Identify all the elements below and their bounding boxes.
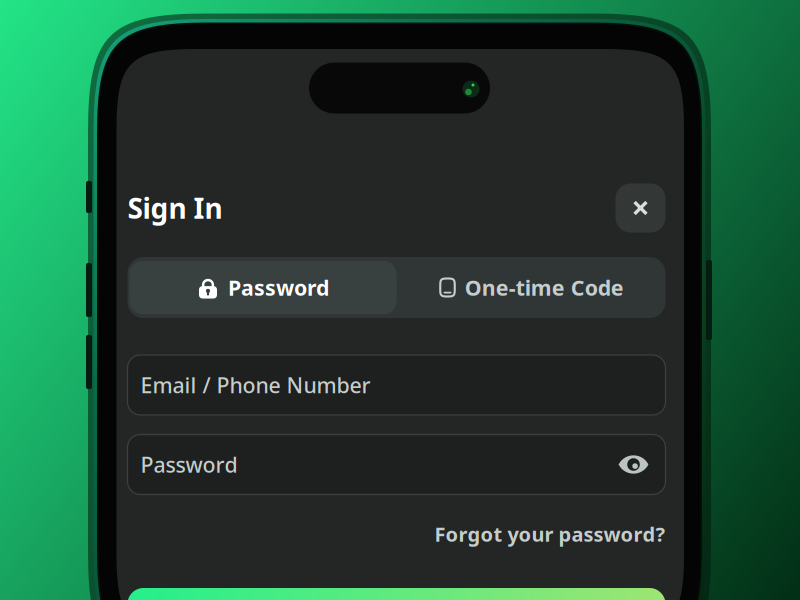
button[interactable]: Close bbox=[615, 183, 665, 232]
staticText: Password bbox=[228, 273, 329, 302]
staticText: Password bbox=[140, 450, 237, 479]
staticText: Sign In bbox=[127, 189, 222, 227]
button[interactable]: Password bbox=[127, 257, 398, 318]
button[interactable]: One-time Code bbox=[398, 257, 665, 318]
button[interactable]: Continue bbox=[127, 588, 665, 600]
button[interactable]: Show password bbox=[612, 443, 654, 485]
staticText: Email / Phone Number bbox=[140, 371, 370, 399]
staticText: One-time Code bbox=[465, 273, 624, 302]
staticText: Forgot your password? bbox=[434, 521, 665, 547]
button[interactable]: Forgot your password? bbox=[434, 519, 665, 549]
